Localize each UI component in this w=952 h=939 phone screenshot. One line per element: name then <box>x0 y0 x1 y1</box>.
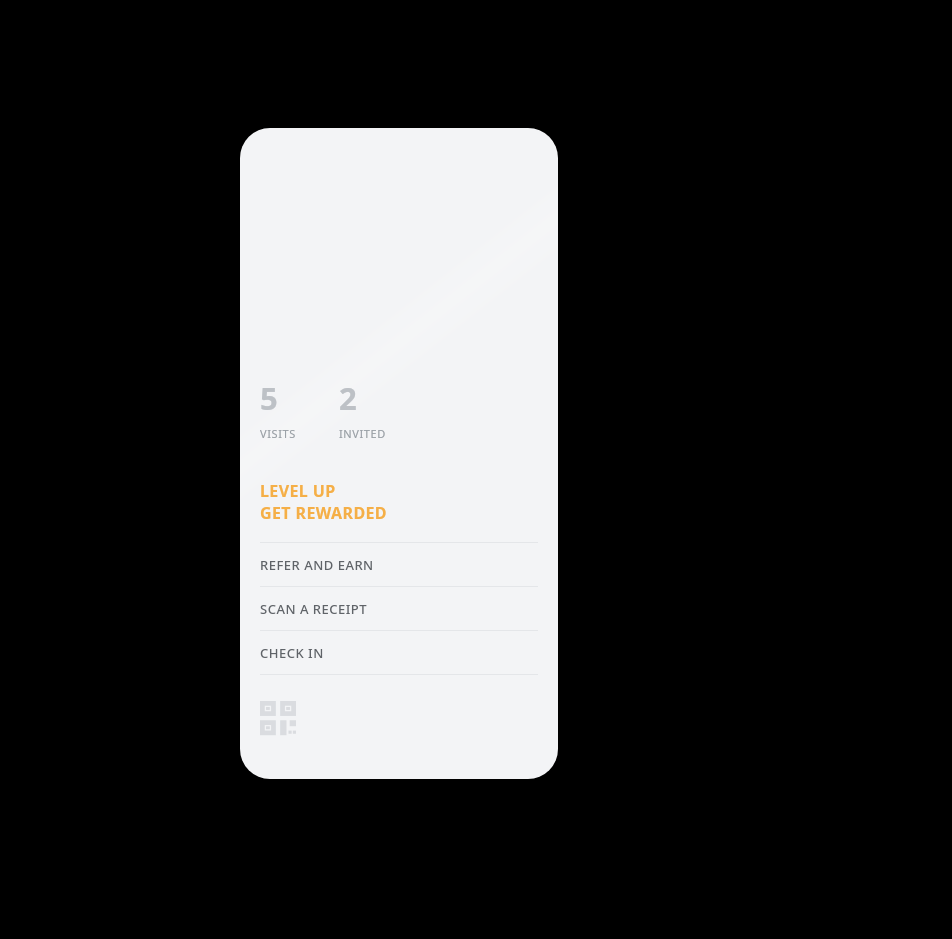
button[interactable]: Show QR code <box>260 701 296 735</box>
button[interactable]: REFER AND EARN <box>260 543 538 586</box>
staticText: 5 <box>260 377 278 419</box>
staticText: GET REWARDED <box>260 502 387 524</box>
staticText: REFER AND EARN <box>260 556 374 574</box>
staticText: SCAN A RECEIPT <box>260 600 368 618</box>
button[interactable]: LEVEL UP <box>260 480 387 524</box>
button[interactable]: SCAN A RECEIPT <box>260 587 538 630</box>
staticText: INVITED <box>339 426 386 441</box>
staticText: CHECK IN <box>260 644 324 662</box>
button[interactable]: CHECK IN <box>260 631 538 674</box>
staticText: VISITS <box>260 426 296 441</box>
staticText: LEVEL UP <box>260 480 336 502</box>
staticText: 2 <box>339 377 357 419</box>
